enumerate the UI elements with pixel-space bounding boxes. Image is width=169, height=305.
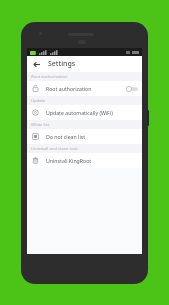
staticText: Update automatically (WiFi): [46, 109, 138, 116]
staticText: Do not clean list: [46, 133, 138, 140]
staticText: Uninstall and clean root: [31, 146, 78, 152]
staticText: Root authorization: [31, 74, 68, 80]
button[interactable]: Root authorization: [27, 81, 142, 96]
staticText: Root authorization: [46, 85, 125, 92]
staticText: Settings: [48, 59, 76, 69]
button[interactable]: Do not clean list: [27, 129, 142, 144]
button[interactable]: Update automatically (WiFi): [27, 105, 142, 120]
staticText: Update: [31, 98, 46, 104]
button[interactable]: Uninstall KingRoot: [27, 153, 142, 168]
button[interactable]: Toggle root authorization: [125, 85, 138, 93]
staticText: White list: [31, 122, 50, 128]
button[interactable]: Back: [30, 58, 42, 70]
staticText: Uninstall KingRoot: [46, 157, 138, 164]
